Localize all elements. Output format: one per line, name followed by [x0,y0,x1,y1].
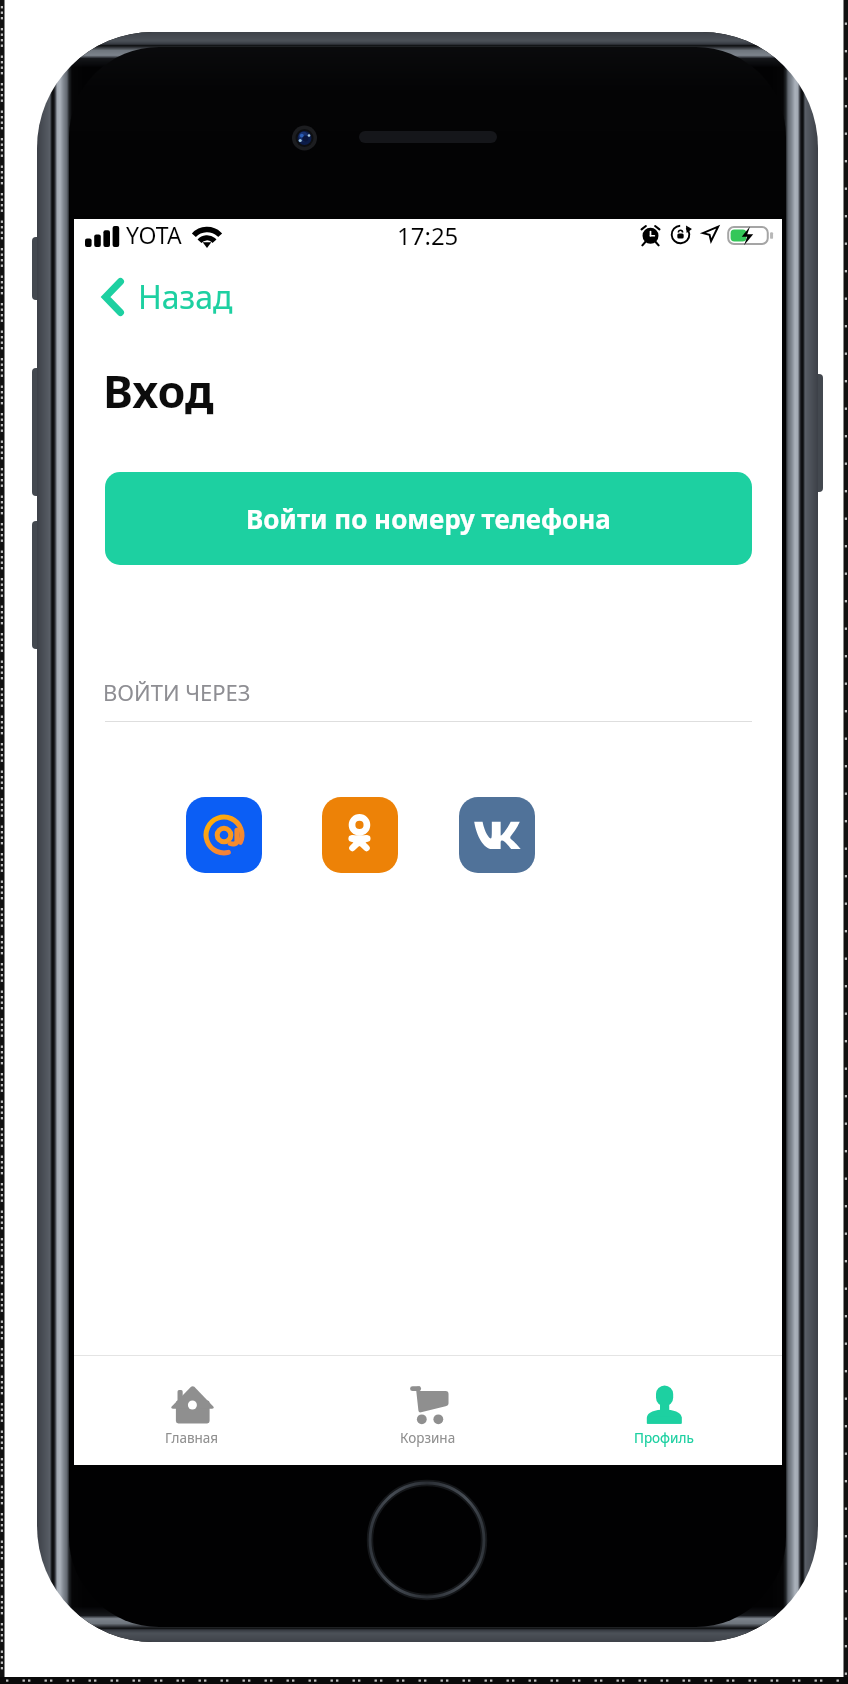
button[interactable]: Назад [102,271,233,323]
staticText: YOTA [126,219,182,250]
staticText: Корзина [400,1429,456,1447]
button[interactable]: Корзина [310,1356,546,1447]
staticText: Вход [103,360,214,421]
button[interactable]: Профиль [546,1356,782,1447]
staticText: Назад [138,275,233,319]
button[interactable]: Войти по номеру телефона [105,472,752,565]
button[interactable]: Главная [74,1356,310,1447]
button[interactable]: Войти через Одноклассники [322,797,398,873]
staticText: 17:25 [397,219,459,252]
staticText: Профиль [634,1429,694,1447]
button[interactable]: Войти через Mail.ru [186,797,262,873]
button[interactable]: Войти через ВКонтакте [459,797,535,873]
staticText: ВОЙТИ ЧЕРЕЗ [103,677,251,707]
staticText: Главная [165,1429,219,1447]
staticText: Войти по номеру телефона [246,501,611,536]
